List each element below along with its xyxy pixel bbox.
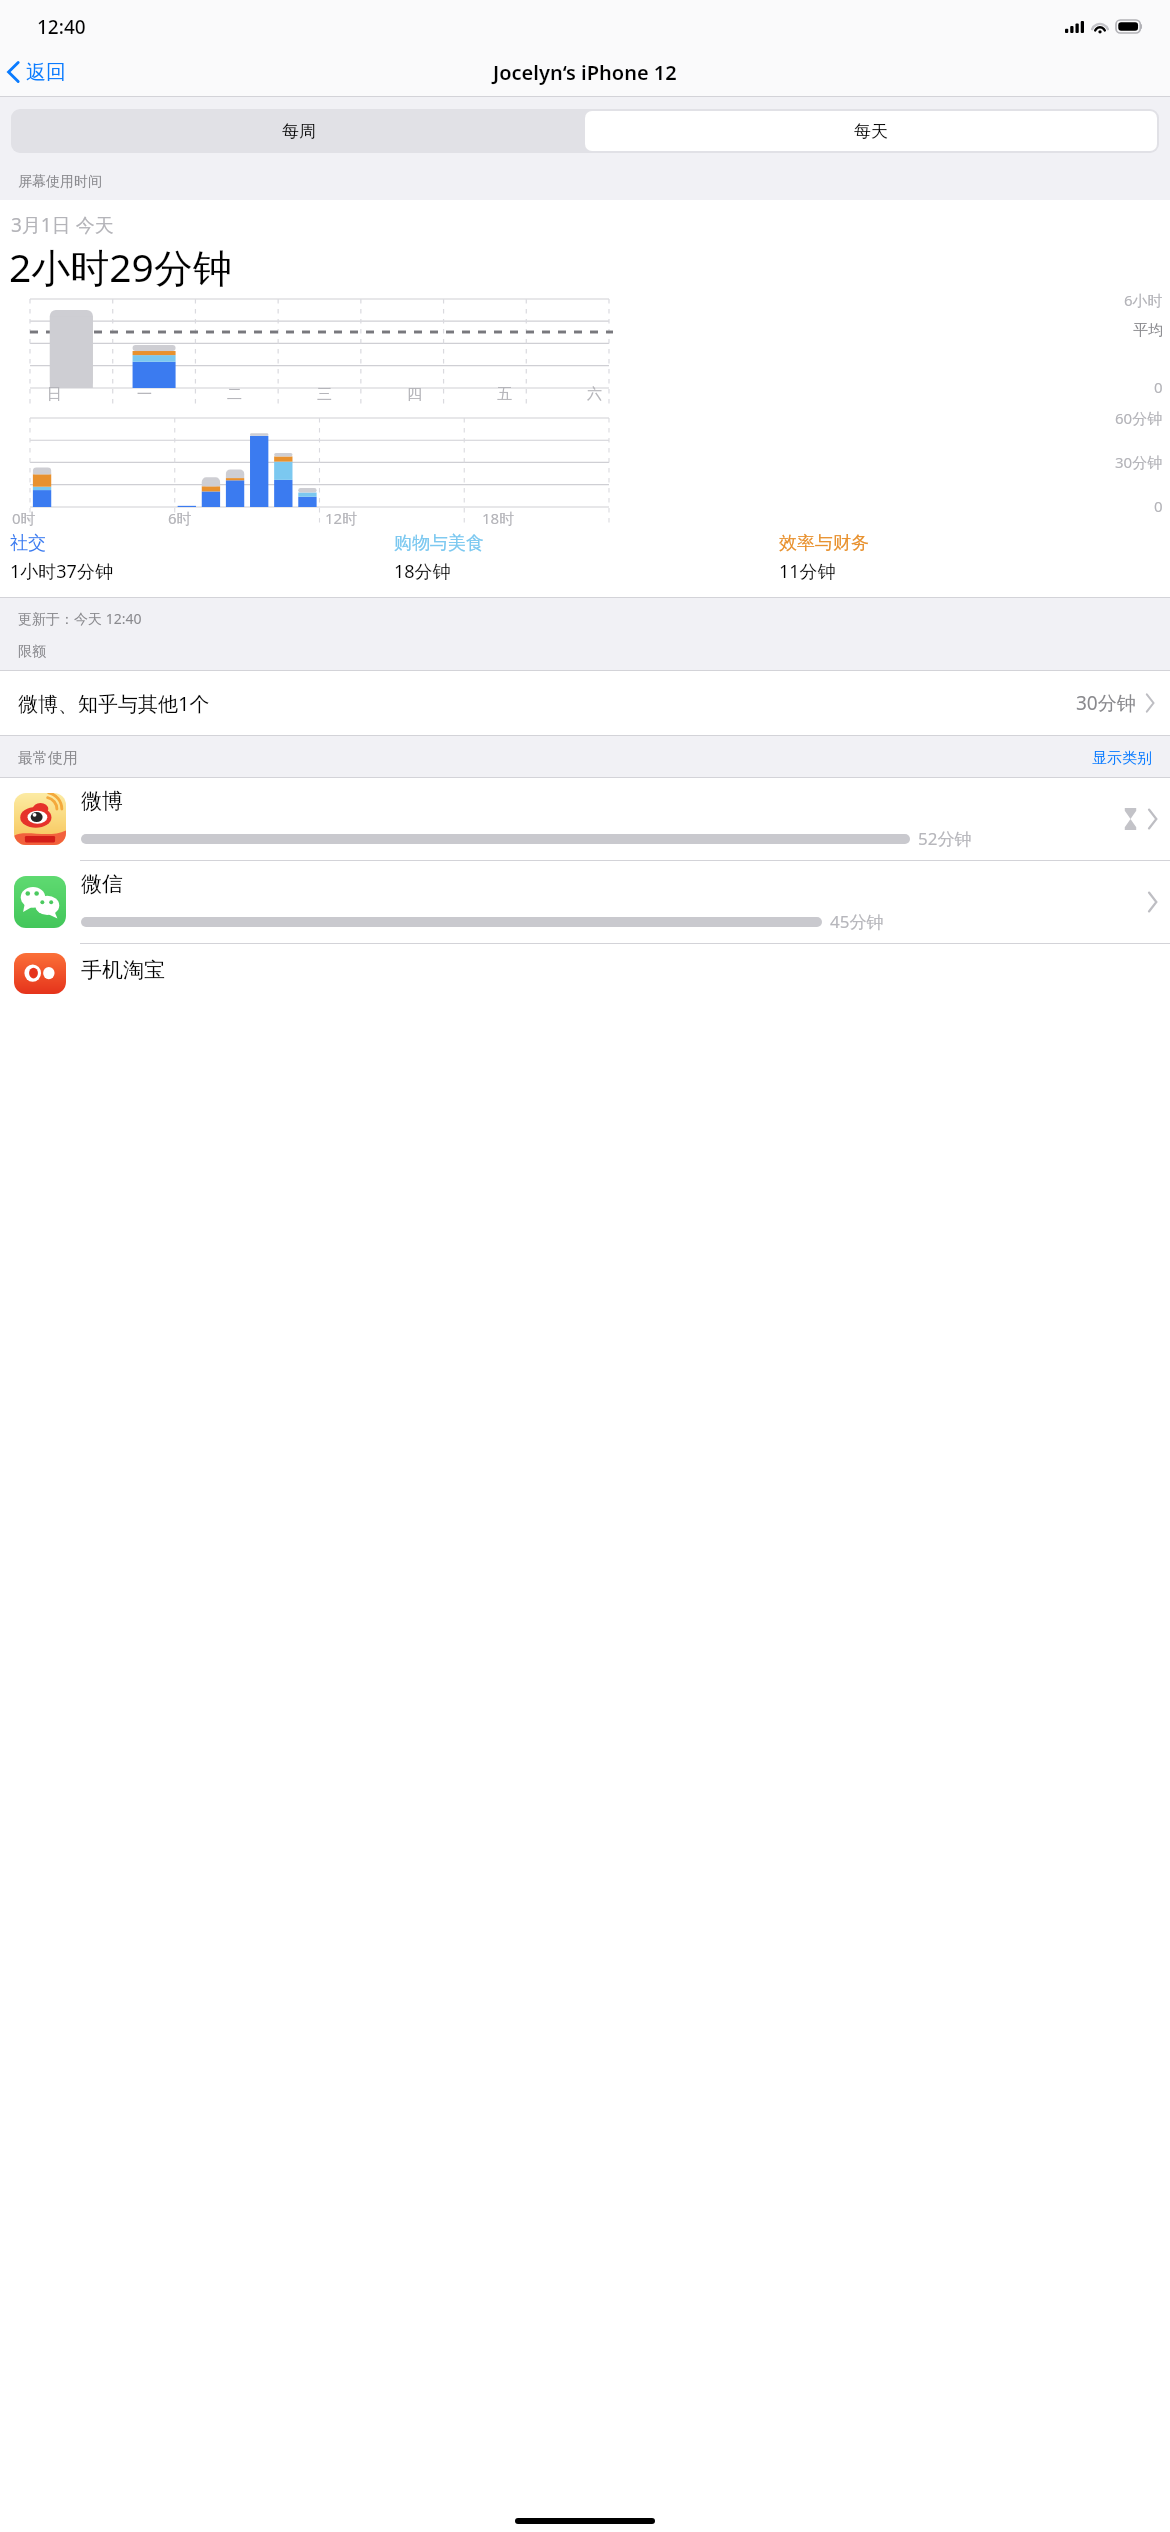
button[interactable]: 微博 bbox=[0, 778, 1170, 860]
staticText: 五 bbox=[497, 385, 512, 404]
staticText: 限额 bbox=[18, 643, 46, 661]
staticText: 12时 bbox=[325, 508, 358, 528]
staticText: 每天 bbox=[854, 121, 888, 142]
staticText: 18时 bbox=[482, 508, 515, 528]
staticText: 微博 bbox=[81, 788, 123, 814]
staticText: 6时 bbox=[168, 508, 192, 528]
staticText: 6小时 bbox=[1124, 290, 1163, 310]
staticText: 2小时29分钟 bbox=[9, 240, 232, 293]
staticText: 30分钟 bbox=[1115, 452, 1163, 472]
staticText: 返回 bbox=[26, 60, 66, 85]
staticText: 18分钟 bbox=[394, 559, 451, 584]
staticText: 一 bbox=[137, 385, 152, 404]
staticText: 0 bbox=[1154, 496, 1163, 516]
button[interactable]: 显示类别 bbox=[1092, 749, 1152, 768]
button[interactable]: 每周 bbox=[13, 111, 585, 151]
staticText: 45分钟 bbox=[830, 910, 884, 933]
staticText: 屏幕使用时间 bbox=[18, 173, 102, 191]
button[interactable]: 微信 bbox=[0, 861, 1170, 943]
button[interactable]: 返回 bbox=[0, 50, 78, 94]
staticText: 3月1日 今天 bbox=[11, 212, 114, 238]
staticText: 微博、知乎与其他1个 bbox=[18, 690, 210, 717]
staticText: 更新于：今天 12:40 bbox=[18, 609, 142, 628]
staticText: 手机淘宝 bbox=[81, 957, 165, 983]
staticText: 11分钟 bbox=[779, 559, 836, 584]
button[interactable]: 微博、知乎与其他1个 bbox=[0, 671, 1170, 735]
staticText: 最常使用 bbox=[18, 749, 78, 768]
staticText: 六 bbox=[587, 385, 602, 404]
staticText: 每周 bbox=[282, 121, 316, 142]
staticText: 0 bbox=[1154, 377, 1163, 397]
staticText: 购物与美食 bbox=[394, 532, 484, 555]
staticText: 三 bbox=[317, 385, 332, 404]
staticText: 微信 bbox=[81, 871, 123, 897]
staticText: 显示类别 bbox=[1092, 749, 1152, 768]
staticText: 效率与财务 bbox=[779, 532, 869, 555]
staticText: 52分钟 bbox=[918, 827, 972, 850]
other: App limit bbox=[1124, 808, 1137, 830]
button[interactable]: 手机淘宝 bbox=[0, 944, 1170, 994]
staticText: 社交 bbox=[10, 532, 46, 555]
staticText: 12:40 bbox=[37, 14, 86, 40]
staticText: 二 bbox=[227, 385, 242, 404]
staticText: 0时 bbox=[12, 508, 36, 528]
staticText: 平均 bbox=[1133, 321, 1163, 340]
staticText: Jocelyn‘s iPhone 12 bbox=[493, 59, 677, 86]
button[interactable]: 每天 bbox=[585, 111, 1157, 151]
staticText: 30分钟 bbox=[1076, 690, 1136, 716]
staticText: 1小时37分钟 bbox=[10, 559, 113, 584]
staticText: 60分钟 bbox=[1115, 408, 1163, 428]
staticText: 四 bbox=[407, 385, 422, 404]
staticText: 日 bbox=[47, 385, 62, 404]
